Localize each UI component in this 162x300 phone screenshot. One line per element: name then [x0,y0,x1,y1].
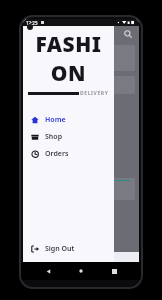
staticText: 12:25 [26,20,38,26]
button[interactable]: Home [75,265,87,277]
staticText: Home [45,115,66,125]
button[interactable]: Sign Out [23,240,114,258]
button[interactable]: Search [122,28,133,39]
staticText: DELIVERY [80,90,109,97]
staticText: Sign Out [45,244,75,254]
button[interactable]: Shop [23,128,114,145]
button[interactable]: Home [23,111,114,128]
staticText: FASHION [28,30,109,88]
button[interactable]: Recent apps [108,265,120,277]
button[interactable]: Orders [23,145,114,162]
button[interactable] [27,76,135,94]
button[interactable]: Back [42,265,54,277]
staticText: Orders [45,149,69,159]
staticText: Shop [45,132,63,142]
button[interactable] [27,178,135,200]
button[interactable] [27,45,135,71]
